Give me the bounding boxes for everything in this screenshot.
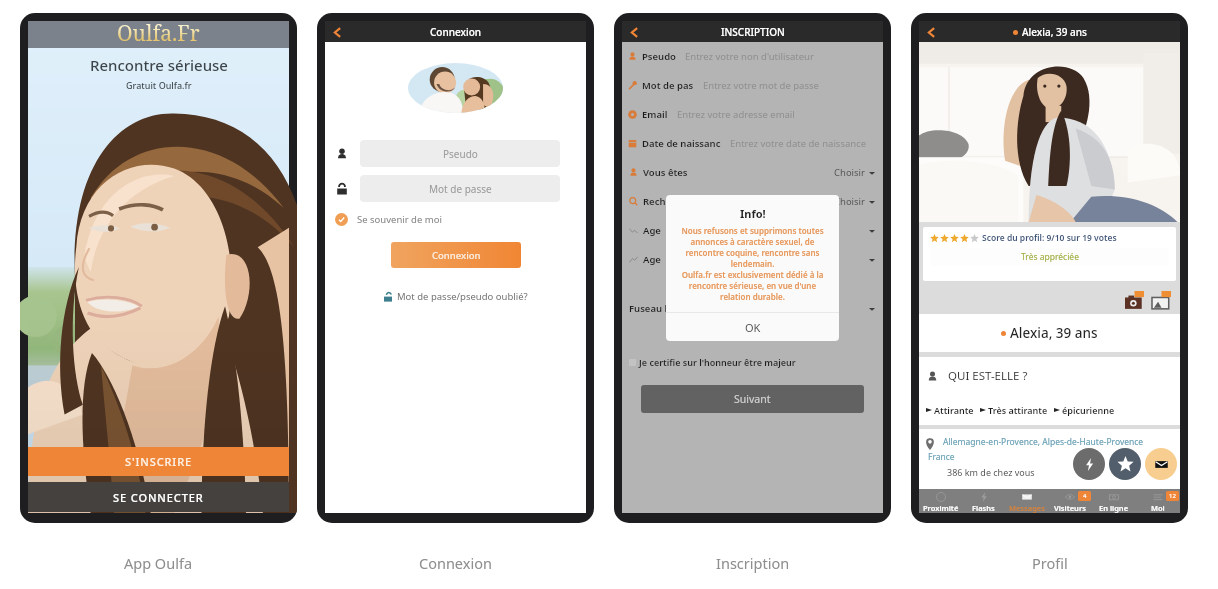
staticText: Score du profil: 9/10 sur 19 votes — [982, 232, 1117, 244]
button[interactable]: Age — [629, 245, 875, 274]
staticText: France — [928, 451, 955, 463]
staticText: OK — [745, 320, 761, 335]
button[interactable]: Vous êtes — [629, 158, 875, 187]
staticText: Messages — [1009, 503, 1045, 513]
staticText: Rencontre sérieuse — [90, 55, 228, 75]
staticText: Mot de passe — [429, 182, 492, 196]
staticText: Inscription — [716, 553, 790, 573]
button[interactable]: Très appréciée — [930, 248, 1169, 266]
staticText: Pseudo — [642, 50, 676, 63]
staticText: Pseudo — [443, 147, 478, 161]
button[interactable]: Je certifie sur l'honneur être majeur — [629, 356, 883, 368]
button[interactable]: Date de naissanc — [628, 129, 883, 158]
staticText: Attirante — [934, 404, 974, 416]
staticText: Entrez votre date de naissance — [730, 137, 867, 150]
staticText: Mot de pas — [642, 79, 694, 92]
button[interactable]: Message — [1145, 448, 1177, 480]
staticText: Très attirante — [988, 404, 1048, 416]
button[interactable]: Email — [628, 100, 883, 129]
staticText: En ligne — [1099, 503, 1129, 513]
staticText: Entrez votre adresse email — [677, 108, 795, 121]
staticText: Connexion — [419, 553, 492, 573]
button[interactable]: Rech — [629, 187, 875, 216]
staticText: Allemagne-en-Provence, Alpes-de-Haute-Pr… — [943, 436, 1144, 448]
staticText: Connexion — [432, 249, 481, 262]
staticText: S'INSCRIRE — [125, 454, 193, 469]
button[interactable]: Back — [626, 24, 642, 40]
button[interactable]: Mot de passe — [360, 175, 560, 202]
staticText: Age — [643, 253, 661, 266]
button[interactable]: SE CONNECTER — [28, 482, 289, 512]
staticText: SE CONNECTER — [113, 490, 204, 505]
staticText: INSCRIPTION — [721, 25, 785, 39]
staticText: Alexia, 39 ans — [1022, 25, 1087, 39]
button[interactable]: Visiteurs — [1048, 489, 1092, 513]
button[interactable]: Favorite — [1109, 448, 1141, 480]
button[interactable]: Messages — [1005, 489, 1048, 513]
staticText: Date de naissanc — [642, 137, 721, 150]
staticText: Flashs — [972, 503, 995, 513]
staticText: Alexia, 39 ans — [1010, 324, 1098, 342]
button[interactable]: Back — [329, 24, 345, 40]
button[interactable]: Fuseau h — [629, 294, 875, 323]
staticText: Info! — [740, 206, 766, 221]
button[interactable]: Moi — [1136, 489, 1180, 513]
staticText: Se souvenir de moi — [357, 213, 442, 226]
staticText: Mot de passe/pseudo oublié? — [397, 290, 528, 303]
button[interactable]: Proximité — [919, 489, 962, 513]
staticText: Très appréciée — [1021, 251, 1079, 263]
staticText: 4 — [1083, 492, 1087, 500]
button[interactable]: Pseudo — [628, 42, 883, 71]
staticText: App Oulfa — [124, 553, 193, 573]
staticText: Suivant — [734, 392, 771, 406]
button[interactable]: Pseudo — [360, 140, 560, 167]
staticText: Age — [643, 224, 661, 237]
button[interactable]: S'INSCRIRE — [28, 447, 289, 476]
staticText: Oulfa.Fr — [117, 19, 200, 46]
staticText: Choisir — [834, 166, 865, 179]
staticText: Entrez votre mot de passe — [703, 79, 819, 92]
staticText: Entrez votre non d'utilisateur — [685, 50, 814, 63]
button[interactable]: OK — [666, 313, 839, 341]
staticText: Vous êtes — [643, 166, 688, 179]
staticText: 12 — [1169, 492, 1176, 500]
staticText: 386 km de chez vous — [947, 466, 1035, 478]
button[interactable]: Age — [629, 216, 875, 245]
staticText: Rech — [643, 195, 666, 208]
button[interactable]: Se souvenir de moi — [335, 213, 586, 226]
button[interactable]: Flashs — [962, 489, 1005, 513]
staticText: Visiteurs — [1054, 503, 1086, 513]
button[interactable]: Albums — [1152, 291, 1171, 310]
staticText: Moi — [1151, 503, 1165, 513]
button[interactable]: Photos — [1125, 291, 1144, 310]
staticText: épicurienne — [1062, 404, 1115, 416]
button[interactable]: En ligne — [1092, 489, 1136, 513]
button[interactable]: Mot de passe/pseudo oublié? — [325, 290, 586, 303]
staticText: Je certifie sur l'honneur être majeur — [639, 356, 796, 368]
staticText: Email — [642, 108, 668, 121]
staticText: Choisir — [834, 195, 865, 208]
button[interactable]: Mot de pas — [628, 71, 883, 100]
staticText: Nous refusons et supprimons toutes annon… — [673, 225, 832, 302]
staticText: QUI EST-ELLE ? — [948, 368, 1028, 384]
button[interactable]: Connexion — [391, 242, 521, 268]
staticText: Proximité — [923, 503, 959, 513]
staticText: Connexion — [430, 25, 482, 39]
button[interactable]: Flash — [1073, 448, 1105, 480]
staticText: Gratuit Oulfa.fr — [126, 79, 192, 91]
staticText: Fuseau h — [629, 302, 671, 315]
button[interactable]: Suivant — [641, 385, 864, 413]
staticText: Profil — [1032, 553, 1068, 573]
button[interactable]: Back — [923, 24, 939, 40]
